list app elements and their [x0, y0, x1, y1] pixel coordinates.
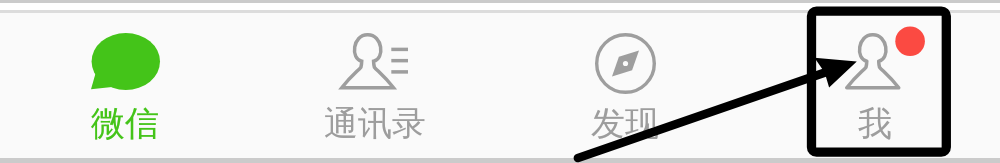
- other: Annotation highlighting the Me tab: [0, 0, 1000, 163]
- button[interactable]: 通讯录: [250, 0, 500, 163]
- staticText: 微信: [91, 102, 159, 145]
- button[interactable]: 我: [750, 0, 1000, 163]
- staticText: 通讯录: [324, 102, 426, 145]
- button[interactable]: 发现: [500, 0, 750, 163]
- staticText: 我: [858, 102, 892, 145]
- button[interactable]: 微信: [0, 0, 250, 163]
- staticText: 发现: [591, 102, 659, 145]
